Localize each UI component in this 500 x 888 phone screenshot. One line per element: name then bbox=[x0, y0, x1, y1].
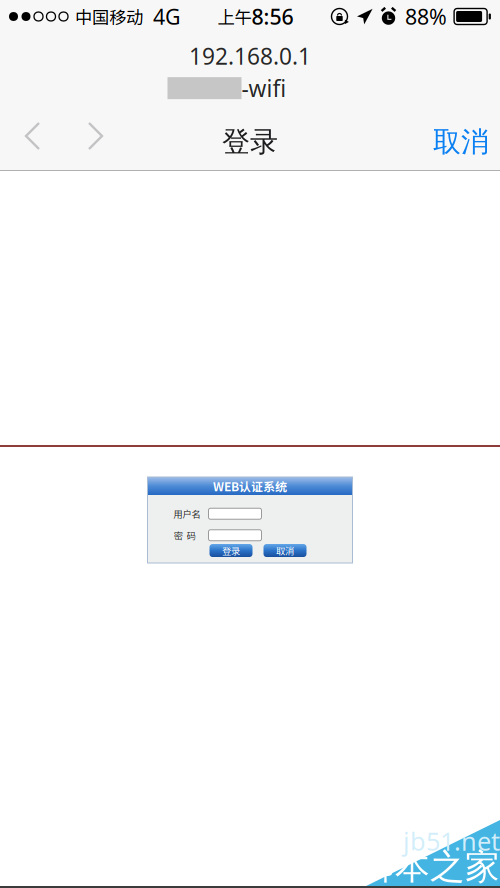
staticText: -wifi bbox=[241, 73, 286, 103]
staticText: 登录 bbox=[222, 544, 240, 557]
button[interactable]: 取消 bbox=[263, 544, 306, 557]
staticText: 用户名 bbox=[173, 507, 200, 520]
staticText: 中国移动 bbox=[75, 4, 143, 29]
staticText: 88% bbox=[405, 2, 447, 31]
staticText: 取消 bbox=[276, 544, 294, 557]
staticText: jb51.net bbox=[403, 824, 500, 858]
staticText: 密 码 bbox=[173, 528, 195, 542]
staticText: 脚本之家 bbox=[360, 846, 500, 888]
staticText: 8:56 bbox=[251, 2, 293, 31]
staticText: 上午 bbox=[217, 4, 251, 29]
button[interactable]: Back bbox=[0, 119, 65, 165]
button[interactable]: 取消 bbox=[433, 119, 500, 165]
staticText: 登录 bbox=[222, 125, 278, 159]
staticText: WEB认证系统 bbox=[213, 477, 287, 495]
button[interactable]: Forward bbox=[65, 119, 126, 165]
staticText: 4G bbox=[153, 2, 181, 31]
staticText: 取消 bbox=[433, 125, 489, 159]
staticText: 192.168.0.1 bbox=[189, 41, 311, 71]
button[interactable]: 登录 bbox=[209, 544, 252, 557]
